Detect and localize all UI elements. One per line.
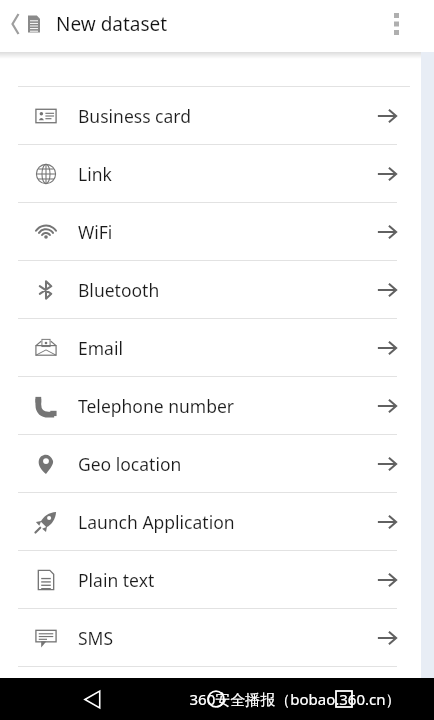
button[interactable]: Plain text [0,551,421,609]
button[interactable]: More options [372,0,420,48]
button[interactable]: Back [70,678,114,720]
button[interactable]: Link [0,145,421,203]
button[interactable]: Launch Application [0,493,421,551]
staticText: Geo location [78,452,182,476]
button[interactable]: Email [0,319,421,377]
staticText: Plain text [78,568,155,592]
staticText: Email [78,336,123,360]
staticText: 360安全播报（bobao.360.cn） [189,689,401,709]
staticText: Launch Application [78,510,235,534]
button[interactable]: Back [6,3,48,45]
button[interactable]: WiFi [0,203,421,261]
staticText: Business card [78,104,191,128]
staticText: SMS [78,626,114,650]
button[interactable]: Bluetooth [0,261,421,319]
staticText: Telephone number [78,394,235,418]
staticText: New dataset [56,11,168,37]
staticText: WiFi [78,220,113,244]
button[interactable]: Geo location [0,435,421,493]
button[interactable]: Telephone number [0,377,421,435]
button[interactable]: Recent apps [322,678,366,720]
staticText: Link [78,162,112,186]
button[interactable]: Business card [0,87,421,145]
staticText: Bluetooth [78,278,160,302]
button[interactable]: SMS [0,609,421,667]
button[interactable]: Home [194,678,238,720]
